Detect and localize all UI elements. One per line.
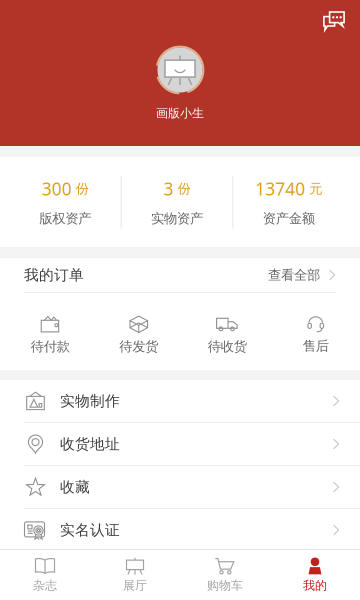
staticText: 杂志 (33, 578, 57, 593)
staticText: 待发货 (119, 338, 158, 355)
button[interactable]: 我的订单 (0, 258, 360, 292)
button[interactable]: 收藏 (0, 466, 360, 508)
staticText: 300 (42, 177, 72, 200)
staticText: 我的订单 (24, 266, 84, 284)
button[interactable]: 收货地址 (0, 423, 360, 465)
button[interactable]: 待收货 (183, 315, 271, 355)
staticText: 资产金额 (263, 210, 315, 227)
button[interactable]: 购物车 (180, 557, 270, 593)
staticText: 我的 (303, 578, 327, 593)
staticText: 13740 (255, 177, 305, 200)
staticText: 待付款 (31, 338, 70, 355)
staticText: 实名认证 (60, 521, 120, 539)
staticText: 收货地址 (60, 435, 120, 453)
staticText: 3 (163, 177, 173, 200)
staticText: 份 (177, 181, 190, 197)
staticText: 购物车 (207, 578, 243, 593)
staticText: 收藏 (60, 478, 90, 496)
staticText: 份 (76, 181, 89, 197)
staticText: 元 (309, 181, 322, 197)
button[interactable]: 杂志 (0, 557, 90, 593)
staticText: 待收货 (208, 338, 247, 355)
staticText: 售后 (303, 338, 329, 354)
button[interactable]: 实物制作 (0, 380, 360, 422)
button[interactable]: 待发货 (94, 315, 183, 355)
staticText: 查看全部 (268, 267, 320, 283)
staticText: 实物资产 (151, 210, 203, 227)
button[interactable]: 待付款 (6, 315, 94, 355)
button[interactable]: Messages (309, 0, 360, 40)
staticText: 实物制作 (60, 392, 120, 410)
staticText: 展厅 (123, 578, 147, 593)
button[interactable]: 售后 (271, 316, 360, 354)
button[interactable]: 实名认证 (0, 509, 360, 551)
staticText: 画版小生 (156, 106, 204, 121)
staticText: 版权资产 (39, 210, 91, 227)
button[interactable]: 我的 (270, 557, 360, 593)
button[interactable]: 展厅 (90, 557, 180, 593)
